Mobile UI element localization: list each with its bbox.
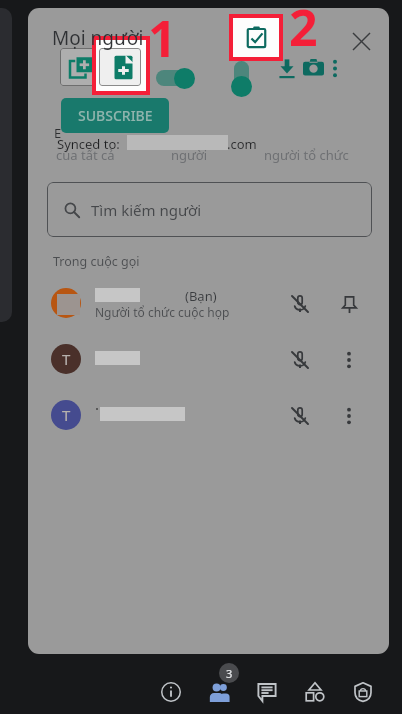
- staticText: người: [171, 146, 208, 164]
- button[interactable]: People: [201, 670, 237, 714]
- button[interactable]: Host controls: [345, 670, 381, 714]
- staticText: E: [54, 124, 62, 142]
- staticText: Trong cuộc gọi: [53, 253, 140, 270]
- staticText: Người tổ chức cuộc họp: [95, 304, 230, 320]
- staticText: 1: [148, 4, 177, 72]
- button[interactable]: More options: [331, 59, 339, 78]
- staticText: SUBSCRIBE: [78, 106, 153, 125]
- button[interactable]: New document: [99, 48, 141, 86]
- button[interactable]: Tìm kiếm người: [47, 182, 372, 237]
- button[interactable]: Activities: [297, 670, 333, 714]
- button[interactable]: Microphone off: [288, 348, 312, 372]
- button[interactable]: người tổ chức: [264, 146, 349, 164]
- button[interactable]: Pin: [337, 292, 361, 316]
- staticText: của tất cả: [56, 146, 115, 164]
- button[interactable]: Close: [348, 28, 374, 54]
- button[interactable]: Checklist: [229, 14, 283, 61]
- staticText: .com: [227, 135, 257, 153]
- staticText: Synced to:: [57, 135, 120, 153]
- button[interactable]: của tất cả: [56, 146, 115, 164]
- button[interactable]: Microphone off: [288, 404, 312, 428]
- button[interactable]: Microphone off: [288, 292, 312, 316]
- button[interactable]: More options: [337, 348, 361, 372]
- staticText: người tổ chức: [264, 146, 349, 164]
- button[interactable]: Info: [153, 670, 189, 714]
- button[interactable]: SUBSCRIBE: [61, 98, 169, 133]
- staticText: T: [62, 349, 71, 369]
- button[interactable]: (Bạn): [40, 282, 380, 326]
- staticText: (Bạn): [185, 287, 217, 305]
- button[interactable]: T: [40, 338, 380, 382]
- button[interactable]: Download: [278, 59, 296, 79]
- staticText: 3: [226, 666, 233, 681]
- button[interactable]: T: [40, 394, 380, 438]
- button[interactable]: Camera: [303, 58, 324, 77]
- staticText: T: [62, 405, 71, 425]
- staticText: 2: [289, 0, 318, 61]
- button[interactable]: Chat: [249, 670, 285, 714]
- button[interactable]: Duplicate slide: [60, 48, 99, 86]
- staticText: Mọi người: [52, 25, 144, 51]
- button[interactable]: người: [171, 146, 208, 164]
- button[interactable]: More options: [337, 404, 361, 428]
- staticText: Tìm kiếm người: [91, 200, 202, 220]
